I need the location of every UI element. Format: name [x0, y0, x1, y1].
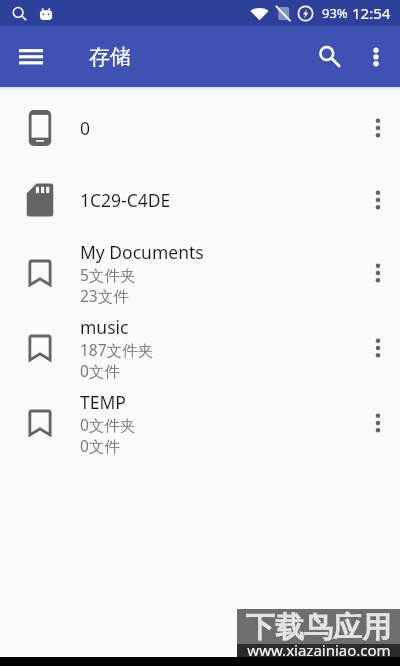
button[interactable]: 0 [0, 91, 400, 165]
staticText: 1C29-C4DE [80, 188, 171, 212]
button[interactable]: TEMP [0, 385, 400, 460]
staticText: 5文件夹 [80, 264, 136, 285]
staticText: TEMP [80, 390, 126, 414]
staticText: 93% [322, 4, 348, 22]
button[interactable]: My Documents [0, 235, 400, 310]
staticText: 12:54 [352, 3, 391, 23]
button[interactable]: More options [352, 165, 400, 235]
staticText: 23文件 [80, 285, 129, 306]
button[interactable]: 1C29-C4DE [0, 165, 400, 235]
staticText: My Documents [80, 240, 204, 264]
button[interactable]: Menu [0, 26, 62, 87]
staticText: 0文件 [80, 435, 120, 456]
button[interactable]: More options [352, 235, 400, 310]
staticText: 存储 [89, 44, 131, 70]
staticText: 下载鸟应用 [246, 609, 391, 644]
staticText: 0文件 [80, 360, 120, 381]
staticText: www.xiazainiao.com [247, 640, 391, 660]
button[interactable]: More options [353, 26, 400, 87]
staticText: 187文件夹 [80, 339, 154, 360]
button[interactable]: More options [352, 310, 400, 385]
button[interactable]: More options [352, 385, 400, 460]
button[interactable]: Search [301, 26, 353, 87]
button[interactable]: More options [352, 91, 400, 165]
staticText: 0文件夹 [80, 414, 136, 435]
staticText: music [80, 315, 129, 339]
button[interactable]: music [0, 310, 400, 385]
staticText: 0 [80, 116, 91, 140]
